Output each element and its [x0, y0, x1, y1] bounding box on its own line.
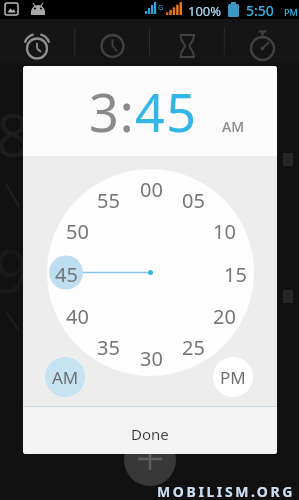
- button[interactable]: [149, 19, 224, 63]
- staticText: AM: [52, 366, 79, 389]
- staticText: 100%: [188, 2, 222, 20]
- staticText: 50: [66, 218, 89, 242]
- staticText: 9: [0, 229, 29, 311]
- staticText: 00: [140, 176, 163, 200]
- button[interactable]: [224, 19, 299, 63]
- staticText: 45: [135, 76, 198, 147]
- button[interactable]: [74, 19, 149, 63]
- staticText: 05: [182, 187, 205, 211]
- staticText: 8: [0, 93, 31, 175]
- staticText: PM: [284, 6, 298, 18]
- staticText: 45: [55, 261, 78, 285]
- staticText: 5:50: [246, 1, 274, 20]
- staticText: 30: [140, 345, 163, 369]
- staticText: 55: [97, 187, 120, 211]
- staticText: 3:: [89, 76, 135, 147]
- button[interactable]: [0, 19, 74, 63]
- staticText: 35: [97, 334, 120, 358]
- staticText: MOBILISM.ORG: [157, 482, 296, 500]
- staticText: G: [158, 3, 164, 13]
- staticText: 10: [213, 218, 236, 242]
- staticText: PM: [220, 366, 246, 389]
- staticText: 20: [213, 303, 236, 327]
- button[interactable]: AM: [45, 357, 85, 397]
- button[interactable]: Done: [23, 407, 277, 454]
- button[interactable]: PM: [213, 357, 253, 397]
- staticText: 25: [182, 334, 205, 358]
- staticText: Done: [131, 424, 169, 444]
- staticText: 15: [224, 261, 247, 285]
- staticText: 40: [66, 303, 89, 327]
- staticText: AM: [222, 117, 245, 136]
